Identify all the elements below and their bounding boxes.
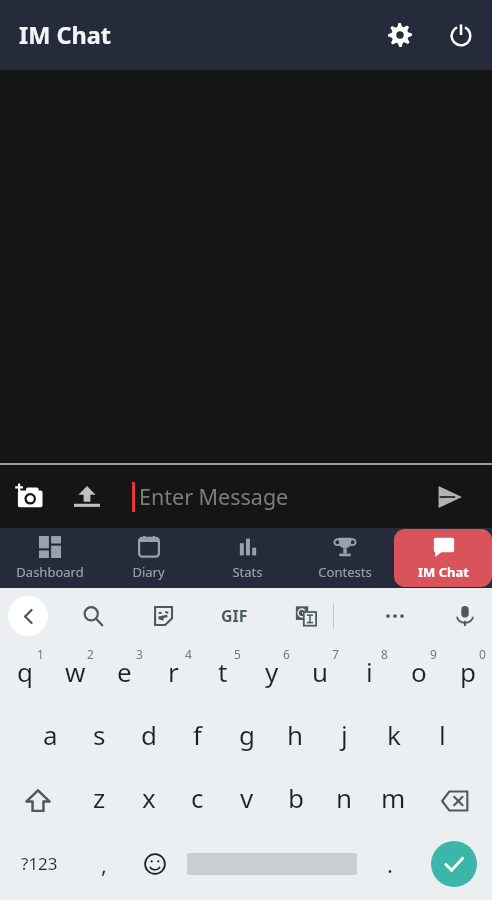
button[interactable]: f bbox=[173, 706, 222, 769]
staticText: 0 bbox=[479, 646, 486, 662]
button[interactable]: Stats bbox=[198, 528, 296, 588]
button[interactable]: . bbox=[364, 832, 415, 895]
staticText: q bbox=[17, 654, 33, 689]
staticText: Dashboard bbox=[16, 563, 84, 581]
button[interactable]: q bbox=[0, 643, 50, 706]
button[interactable]: v bbox=[222, 769, 271, 832]
button[interactable]: Settings bbox=[376, 11, 424, 59]
staticText: Stats bbox=[232, 563, 263, 581]
button[interactable]: Dashboard bbox=[0, 528, 99, 588]
staticText: Diary bbox=[132, 563, 165, 581]
button[interactable]: Done bbox=[415, 832, 492, 895]
button[interactable]: Emoji bbox=[129, 832, 180, 895]
button[interactable]: j bbox=[320, 706, 369, 769]
staticText: 6 bbox=[283, 646, 290, 662]
button[interactable]: o bbox=[394, 643, 443, 706]
staticText: f bbox=[193, 717, 202, 752]
button[interactable]: , bbox=[78, 832, 129, 895]
staticText: c bbox=[191, 780, 204, 815]
button[interactable]: x bbox=[124, 769, 173, 832]
staticText: k bbox=[387, 717, 401, 752]
button[interactable]: Voice input bbox=[445, 596, 485, 636]
button[interactable]: Backspace bbox=[418, 769, 492, 832]
button[interactable]: l bbox=[418, 706, 467, 769]
staticText: s bbox=[93, 717, 106, 752]
staticText: ?123 bbox=[21, 852, 58, 875]
staticText: m bbox=[381, 780, 406, 815]
button[interactable]: i bbox=[345, 643, 394, 706]
staticText: e bbox=[117, 654, 132, 689]
staticText: p bbox=[460, 654, 476, 689]
button[interactable]: n bbox=[320, 769, 369, 832]
staticText: t bbox=[218, 654, 228, 689]
staticText: i bbox=[366, 654, 373, 689]
button[interactable]: z bbox=[75, 769, 124, 832]
button[interactable]: a bbox=[26, 706, 75, 769]
staticText: IM Chat bbox=[19, 19, 112, 51]
staticText: o bbox=[411, 654, 427, 689]
button[interactable]: Send bbox=[421, 468, 479, 526]
staticText: , bbox=[101, 849, 107, 879]
staticText: g bbox=[239, 717, 255, 752]
staticText: 9 bbox=[430, 646, 437, 662]
button[interactable]: e bbox=[100, 643, 149, 706]
staticText: w bbox=[65, 654, 86, 689]
staticText: h bbox=[287, 717, 304, 752]
button[interactable]: Search bbox=[73, 596, 113, 636]
button[interactable]: b bbox=[271, 769, 320, 832]
button[interactable]: w bbox=[50, 643, 100, 706]
button[interactable]: k bbox=[369, 706, 418, 769]
button[interactable]: r bbox=[149, 643, 198, 706]
button[interactable]: m bbox=[369, 769, 418, 832]
staticText: 5 bbox=[234, 646, 241, 662]
staticText: b bbox=[288, 780, 304, 815]
button[interactable]: IM Chat bbox=[394, 529, 492, 587]
staticText: r bbox=[168, 654, 179, 689]
button[interactable]: u bbox=[296, 643, 345, 706]
button[interactable]: Diary bbox=[99, 528, 198, 588]
button[interactable]: g bbox=[222, 706, 271, 769]
button[interactable]: GIF bbox=[213, 595, 255, 637]
staticText: Enter Message bbox=[139, 482, 289, 511]
staticText: . bbox=[387, 849, 393, 879]
staticText: y bbox=[265, 654, 279, 689]
staticText: IM Chat bbox=[418, 563, 469, 581]
staticText: u bbox=[312, 654, 329, 689]
button[interactable]: ?123 bbox=[0, 832, 78, 895]
staticText: x bbox=[142, 780, 156, 815]
staticText: v bbox=[240, 780, 254, 815]
staticText: a bbox=[43, 717, 58, 752]
staticText: 1 bbox=[37, 646, 44, 662]
button[interactable]: More bbox=[375, 596, 415, 636]
staticText: Contests bbox=[318, 563, 372, 581]
button[interactable]: Translate bbox=[286, 596, 326, 636]
button[interactable]: Contests bbox=[296, 528, 394, 588]
button[interactable]: s bbox=[75, 706, 124, 769]
button[interactable]: y bbox=[247, 643, 296, 706]
staticText: 8 bbox=[381, 646, 388, 662]
staticText: z bbox=[93, 780, 106, 815]
staticText: 3 bbox=[136, 646, 143, 662]
staticText: j bbox=[341, 717, 348, 752]
staticText: 4 bbox=[185, 646, 192, 662]
staticText: 7 bbox=[332, 646, 339, 662]
staticText: l bbox=[439, 717, 446, 752]
button[interactable]: Upload bbox=[58, 468, 116, 526]
button[interactable]: Space bbox=[180, 832, 364, 895]
staticText: n bbox=[336, 780, 353, 815]
button[interactable]: t bbox=[198, 643, 247, 706]
button[interactable]: h bbox=[271, 706, 320, 769]
button[interactable]: Stickers bbox=[143, 596, 183, 636]
button[interactable]: d bbox=[124, 706, 173, 769]
button[interactable]: c bbox=[173, 769, 222, 832]
button[interactable]: p bbox=[443, 643, 492, 706]
staticText: d bbox=[141, 717, 157, 752]
button[interactable]: Back bbox=[8, 596, 48, 636]
staticText: GIF bbox=[221, 605, 248, 627]
button[interactable]: Take photo bbox=[0, 468, 58, 526]
button[interactable]: Shift bbox=[0, 769, 75, 832]
button[interactable]: Power bbox=[437, 11, 485, 59]
staticText: 2 bbox=[87, 646, 94, 662]
